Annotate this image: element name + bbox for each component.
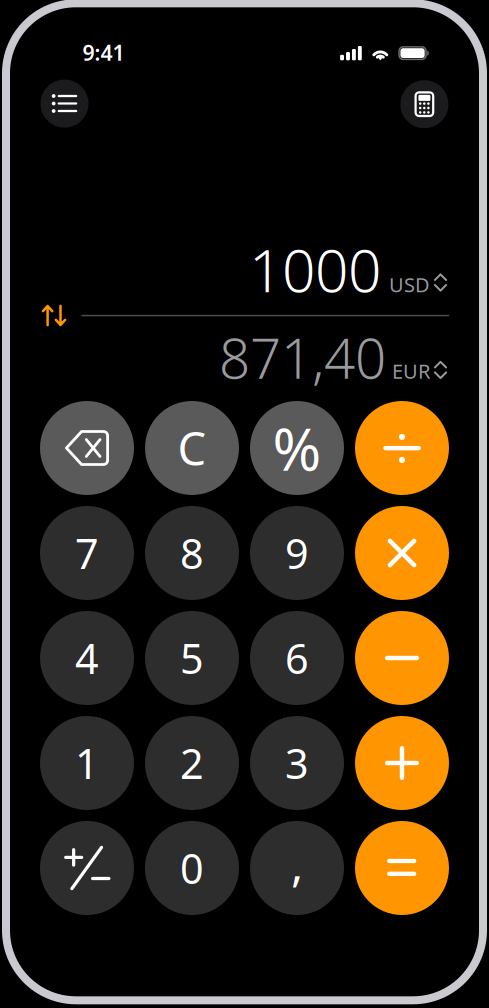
button[interactable]: Clear <box>145 401 239 495</box>
staticText: 0 <box>180 841 204 895</box>
staticText: 4 <box>75 631 99 685</box>
staticText: 7 <box>75 526 99 580</box>
button[interactable]: Calculator <box>400 80 448 128</box>
button[interactable]: Equals <box>355 821 449 915</box>
button[interactable]: 0 <box>145 821 239 915</box>
button[interactable]: 5 <box>145 611 239 705</box>
button[interactable]: Add <box>355 716 449 810</box>
button[interactable]: 4 <box>40 611 134 705</box>
button[interactable]: Select EUR currency <box>386 358 447 384</box>
button[interactable]: 9 <box>250 506 344 600</box>
staticText: 871,40 <box>219 321 386 394</box>
button[interactable]: 8 <box>145 506 239 600</box>
button[interactable]: 7 <box>40 506 134 600</box>
button[interactable]: Delete <box>40 401 134 495</box>
button[interactable]: Swap currencies <box>37 300 71 330</box>
button[interactable]: Percent <box>250 401 344 495</box>
staticText: 8 <box>180 526 204 580</box>
staticText: 2 <box>180 736 204 790</box>
button[interactable]: Select USD currency <box>381 271 447 298</box>
button[interactable]: Subtract <box>355 611 449 705</box>
staticText: C <box>177 418 206 478</box>
button[interactable]: Currency list <box>40 80 88 128</box>
staticText: 9:41 <box>82 38 124 67</box>
button[interactable]: Decimal comma <box>250 821 344 915</box>
staticText: , <box>291 834 303 894</box>
button[interactable]: 1 <box>40 716 134 810</box>
staticText: 6 <box>285 631 309 685</box>
staticText: 9 <box>285 526 309 580</box>
staticText: % <box>272 409 321 487</box>
staticText: 5 <box>180 631 204 685</box>
staticText: 1 <box>75 736 99 790</box>
button[interactable]: 6 <box>250 611 344 705</box>
staticText: 3 <box>285 736 309 790</box>
button[interactable]: Multiply <box>355 506 449 600</box>
staticText: 1000 <box>249 230 381 308</box>
staticText: EUR <box>392 358 430 384</box>
button[interactable]: Divide <box>355 401 449 495</box>
button[interactable]: Plus minus <box>40 821 134 915</box>
staticText: USD <box>389 271 430 298</box>
button[interactable]: 3 <box>250 716 344 810</box>
button[interactable]: 2 <box>145 716 239 810</box>
